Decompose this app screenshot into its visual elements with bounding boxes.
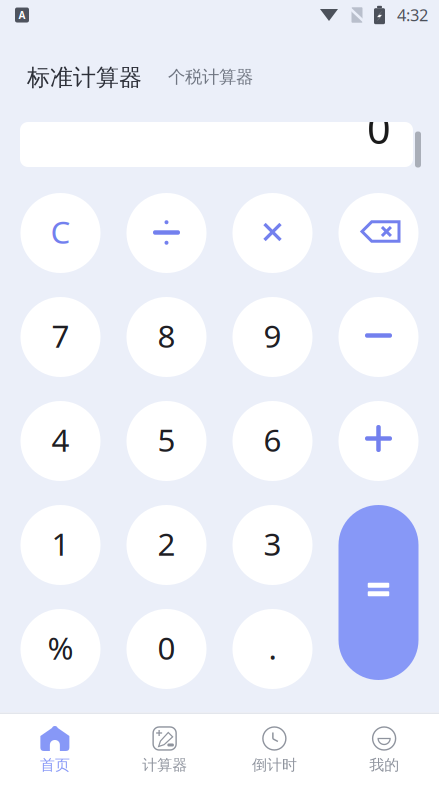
staticText: A [18, 8, 25, 22]
button[interactable]: % [20, 609, 100, 689]
staticText: 4 [51, 418, 69, 461]
staticText: 标准计算器 [27, 63, 142, 92]
button[interactable]: 7 [20, 297, 100, 377]
staticText: 我的 [369, 756, 399, 774]
button[interactable]: 计算器 [110, 714, 220, 788]
staticText: 4:32 [397, 4, 428, 26]
button[interactable]: 个税计算器 [142, 68, 253, 90]
button[interactable]: 我的 [329, 714, 439, 788]
staticText: 计算器 [142, 756, 187, 774]
button[interactable]: Plus [338, 401, 418, 481]
staticText: 个税计算器 [168, 66, 253, 88]
button[interactable]: Equals [338, 505, 418, 680]
staticText: 1 [51, 522, 69, 565]
button[interactable]: Backspace [338, 193, 418, 273]
staticText: 0 [367, 100, 391, 156]
button[interactable]: Divide [126, 193, 206, 273]
staticText: 2 [157, 522, 175, 565]
button[interactable]: 0 [126, 609, 206, 689]
staticText: C [50, 210, 70, 253]
staticText: 9 [263, 314, 281, 357]
button[interactable]: . [232, 609, 312, 689]
staticText: 0 [157, 626, 175, 669]
button[interactable]: 3 [232, 505, 312, 585]
staticText: 5 [157, 418, 175, 461]
button[interactable]: Multiply [232, 193, 312, 273]
staticText: 倒计时 [252, 756, 297, 774]
staticText: 6 [263, 418, 281, 461]
staticText: % [47, 626, 73, 669]
staticText: 7 [51, 314, 69, 357]
button[interactable]: Minus [338, 297, 418, 377]
staticText: 3 [263, 522, 281, 565]
button[interactable]: 4 [20, 401, 100, 481]
button[interactable]: 5 [126, 401, 206, 481]
button[interactable]: 1 [20, 505, 100, 585]
staticText: . [268, 626, 276, 669]
button[interactable]: 6 [232, 401, 312, 481]
button[interactable]: 倒计时 [219, 714, 329, 788]
button[interactable]: 标准计算器 [27, 63, 142, 92]
button[interactable]: 8 [126, 297, 206, 377]
staticText: 8 [157, 314, 175, 357]
button[interactable]: 9 [232, 297, 312, 377]
button[interactable]: 首页 [0, 714, 110, 788]
staticText: 首页 [40, 756, 70, 774]
button[interactable]: 2 [126, 505, 206, 585]
button[interactable]: Clear [20, 193, 100, 273]
